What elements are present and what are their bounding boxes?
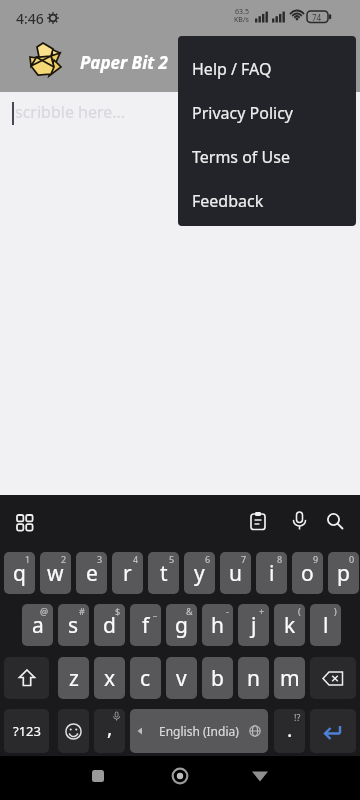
button[interactable]: ?123	[4, 709, 49, 753]
staticText: #	[79, 605, 85, 617]
button[interactable]: i	[256, 552, 287, 594]
staticText: Help / FAQ	[192, 58, 272, 80]
button[interactable]: w	[40, 552, 71, 594]
button[interactable]	[245, 761, 275, 791]
staticText: +	[259, 605, 265, 617]
button[interactable]: u	[220, 552, 251, 594]
staticText: 8	[277, 553, 283, 565]
button[interactable]: c	[130, 657, 161, 699]
staticText: 4	[133, 553, 139, 565]
staticText: ?123	[13, 722, 41, 740]
button[interactable]: d	[94, 604, 125, 646]
staticText: a	[32, 611, 44, 640]
button[interactable]: f	[130, 604, 161, 646]
button[interactable]: t	[148, 552, 179, 594]
staticText: 9	[313, 553, 319, 565]
button[interactable]: Help / FAQ	[178, 47, 356, 91]
button[interactable]	[83, 761, 113, 791]
staticText: scribble here...	[15, 101, 126, 123]
button[interactable]: Terms of Use	[178, 135, 356, 179]
staticText: w	[47, 559, 64, 588]
staticText: e	[86, 559, 98, 588]
button[interactable]: n	[238, 657, 269, 699]
staticText: Paper Bit 2	[80, 51, 168, 74]
staticText: x	[104, 664, 116, 693]
button[interactable]: z	[58, 657, 89, 699]
button[interactable]: g	[166, 604, 197, 646]
staticText: c	[140, 664, 151, 693]
button[interactable]	[284, 506, 314, 536]
staticText: @	[40, 605, 49, 617]
staticText: h	[211, 611, 224, 640]
button[interactable]: .	[274, 709, 305, 753]
staticText: f	[142, 611, 150, 640]
staticText: 63.5	[235, 7, 249, 17]
staticText: 0	[349, 553, 355, 565]
button[interactable]: j	[238, 604, 269, 646]
staticText: l	[323, 611, 329, 640]
staticText: n	[247, 664, 260, 693]
button[interactable]: s	[58, 604, 89, 646]
staticText: u	[229, 559, 242, 588]
staticText: p	[337, 559, 350, 588]
button[interactable]	[4, 657, 49, 699]
staticText: v	[176, 664, 187, 693]
staticText: Terms of Use	[192, 146, 290, 168]
button[interactable]: e	[76, 552, 107, 594]
staticText: _	[153, 605, 157, 617]
staticText: z	[69, 664, 79, 693]
button[interactable]	[310, 657, 356, 699]
staticText: Privacy Policy	[192, 102, 293, 124]
button[interactable]: a	[22, 604, 53, 646]
staticText: )	[334, 605, 337, 617]
staticText: s	[68, 611, 79, 640]
staticText: 7	[241, 553, 247, 565]
staticText: 74	[312, 12, 322, 23]
button[interactable]: p	[328, 552, 359, 594]
button[interactable]: h	[202, 604, 233, 646]
button[interactable]	[165, 761, 195, 791]
button[interactable]: l	[310, 604, 341, 646]
button[interactable]	[58, 709, 89, 753]
staticText: 1	[25, 553, 31, 565]
staticText: (	[298, 605, 301, 617]
staticText: 3	[97, 553, 103, 565]
button[interactable]	[310, 709, 356, 753]
button[interactable]	[0, 92, 360, 132]
button[interactable]: v	[166, 657, 197, 699]
button[interactable]: k	[274, 604, 305, 646]
staticText: q	[13, 559, 26, 588]
staticText: j	[251, 611, 257, 640]
button[interactable]	[10, 508, 40, 538]
button[interactable]: m	[274, 657, 305, 699]
staticText: &	[186, 605, 193, 617]
button[interactable]: x	[94, 657, 125, 699]
staticText: 2	[61, 553, 67, 565]
staticText: b	[211, 664, 224, 693]
staticText: .	[287, 716, 293, 743]
staticText: English (India)	[159, 723, 239, 739]
staticText: d	[103, 611, 116, 640]
staticText: 4:46	[16, 9, 44, 28]
staticText: 6	[205, 553, 211, 565]
button[interactable]: b	[202, 657, 233, 699]
staticText: r	[123, 559, 132, 588]
staticText: 5	[169, 553, 175, 565]
button[interactable]: r	[112, 552, 143, 594]
staticText: -	[226, 605, 229, 617]
button[interactable]	[320, 506, 350, 536]
staticText: i	[269, 559, 275, 588]
button[interactable]: English (India)	[130, 709, 268, 753]
button[interactable]: Privacy Policy	[178, 91, 356, 135]
button[interactable]	[243, 506, 273, 536]
button[interactable]: ,	[94, 709, 125, 753]
button[interactable]: Feedback	[178, 179, 356, 223]
button[interactable]: o	[292, 552, 323, 594]
staticText: KB/s	[234, 15, 249, 25]
staticText: $	[115, 605, 121, 617]
staticText: k	[284, 611, 296, 640]
staticText: ,	[107, 714, 113, 741]
staticText: Feedback	[192, 190, 264, 212]
button[interactable]: y	[184, 552, 215, 594]
button[interactable]: q	[4, 552, 35, 594]
